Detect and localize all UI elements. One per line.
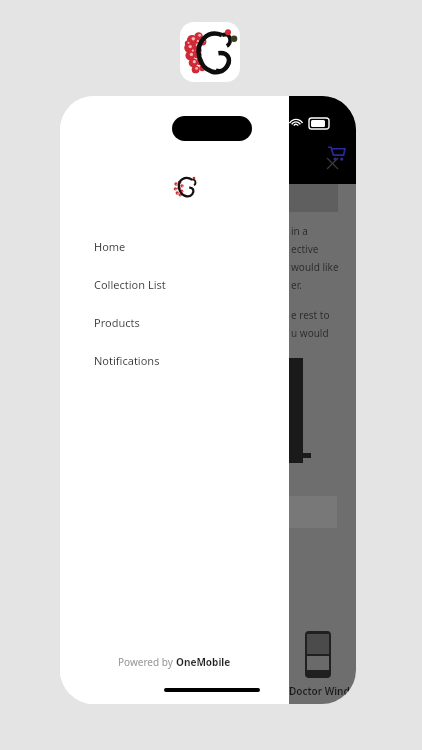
button[interactable]: Collection List bbox=[60, 265, 289, 303]
button[interactable]: Notifications bbox=[60, 341, 289, 379]
staticText: Doctor Wind. bbox=[289, 684, 353, 698]
staticText: er. bbox=[291, 278, 302, 292]
staticText: Powered by bbox=[118, 655, 176, 669]
staticText: e rest to bbox=[291, 308, 330, 322]
button[interactable]: Products bbox=[60, 303, 289, 341]
staticText: Home bbox=[94, 239, 126, 254]
staticText: would like bbox=[291, 260, 339, 274]
button[interactable]: App icon bbox=[180, 22, 240, 82]
staticText: Products bbox=[94, 315, 140, 330]
button[interactable]: Home bbox=[60, 227, 289, 265]
staticText: in a bbox=[291, 224, 308, 238]
staticText: Collection List bbox=[94, 277, 166, 292]
staticText: ective bbox=[291, 242, 319, 256]
button[interactable]: Powered by bbox=[118, 655, 231, 669]
button[interactable]: Close bbox=[319, 150, 345, 176]
button[interactable]: Cart bbox=[327, 144, 345, 162]
staticText: Notifications bbox=[94, 353, 160, 368]
staticText: u would bbox=[291, 326, 329, 340]
staticText: OneMobile bbox=[176, 655, 231, 669]
